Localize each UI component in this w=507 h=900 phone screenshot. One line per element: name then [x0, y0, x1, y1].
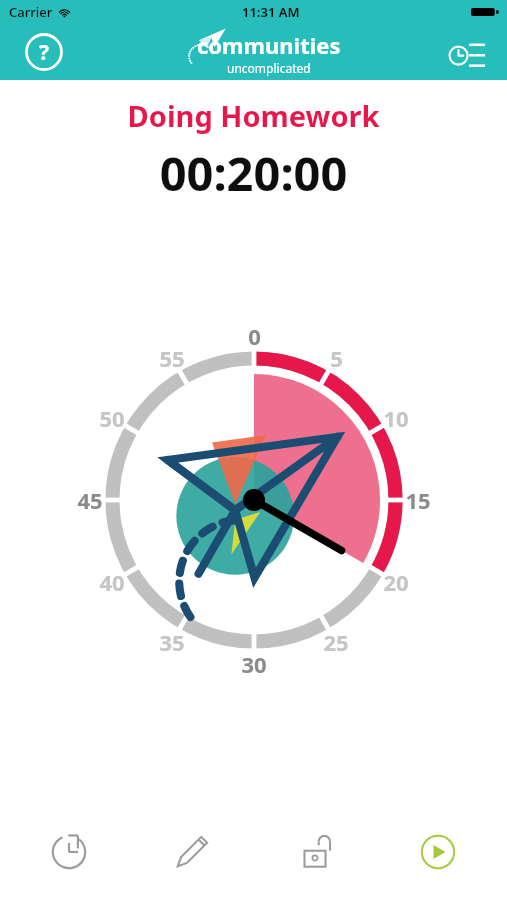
staticText: 55: [159, 343, 185, 373]
staticText: 11:31 AM: [242, 3, 300, 21]
staticText: 45: [77, 485, 103, 515]
button[interactable]: Edit: [164, 824, 220, 880]
staticText: uncomplicated: [227, 60, 311, 76]
staticText: 50: [99, 403, 125, 433]
staticText: 20: [383, 567, 409, 597]
staticText: 00:20:00: [0, 141, 507, 205]
button[interactable]: Start: [410, 824, 466, 880]
staticText: communities: [197, 30, 341, 60]
staticText: 35: [159, 627, 185, 657]
button[interactable]: History: [443, 28, 491, 76]
staticText: Doing Homework: [0, 96, 507, 135]
button[interactable]: Reset: [41, 824, 97, 880]
button[interactable]: Lock: [287, 824, 343, 880]
staticText: 30: [241, 649, 267, 679]
staticText: 0: [248, 321, 261, 351]
staticText: 25: [323, 627, 349, 657]
button[interactable]: Help: [22, 30, 66, 74]
staticText: 15: [405, 485, 431, 515]
staticText: 10: [383, 403, 409, 433]
staticText: 5: [330, 343, 343, 373]
staticText: Carrier: [9, 3, 53, 21]
staticText: ?: [39, 38, 50, 67]
staticText: 40: [99, 567, 125, 597]
